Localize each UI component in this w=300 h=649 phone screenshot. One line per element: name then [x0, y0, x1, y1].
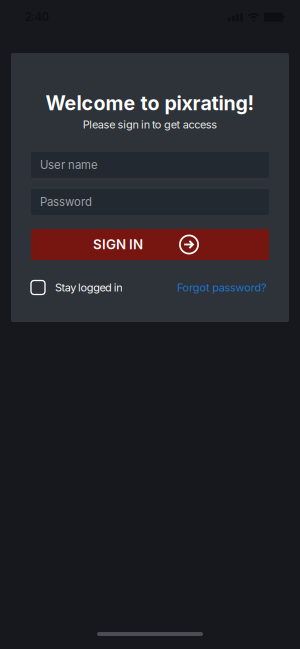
staticText: Password	[40, 195, 92, 209]
staticText: Stay logged in	[55, 281, 122, 294]
button[interactable]: Forgot password?	[177, 281, 269, 294]
button[interactable]: Stay logged in	[31, 280, 122, 294]
staticText: Please sign in to get access	[83, 118, 217, 131]
staticText: Forgot password?	[177, 281, 267, 294]
button[interactable]: User name	[31, 152, 269, 178]
staticText: Welcome to pixrating!	[45, 91, 254, 115]
staticText: SIGN IN	[93, 236, 143, 252]
staticText: 2:40	[25, 10, 49, 24]
staticText: User name	[40, 158, 98, 172]
button[interactable]: SIGN IN	[31, 229, 269, 260]
button[interactable]: Password	[31, 189, 269, 215]
